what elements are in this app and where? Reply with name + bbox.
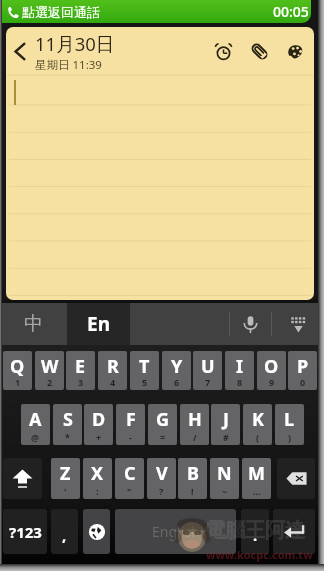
staticText: U: [201, 354, 215, 379]
staticText: www.kocpc.com.tw: [206, 547, 313, 562]
button[interactable]: O: [257, 351, 286, 390]
staticText: J: [223, 407, 229, 432]
staticText: Y: [171, 354, 183, 379]
staticText: 11月30日: [35, 31, 115, 56]
button[interactable]: ,: [51, 509, 78, 554]
staticText: ~: [222, 485, 228, 497]
button[interactable]: A: [21, 404, 50, 445]
button[interactable]: Voice input: [230, 303, 271, 345]
button[interactable]: L: [275, 404, 304, 445]
button[interactable]: X: [83, 458, 112, 499]
staticText: F: [126, 407, 136, 432]
button[interactable]: Attach: [244, 36, 275, 67]
button[interactable]: N: [210, 458, 239, 499]
button[interactable]: Reminder: [208, 36, 239, 67]
staticText: 0: [300, 376, 306, 388]
staticText: R: [107, 354, 119, 379]
staticText: Q: [10, 354, 25, 379]
button[interactable]: S: [53, 404, 82, 445]
button[interactable]: I: [225, 351, 254, 390]
staticText: O: [264, 354, 279, 379]
staticText: 星期日 11:39: [35, 57, 102, 73]
button[interactable]: P: [288, 351, 317, 390]
staticText: Z: [60, 461, 71, 486]
staticText: 4: [110, 376, 116, 388]
staticText: L: [284, 407, 295, 432]
button[interactable]: U: [193, 351, 222, 390]
staticText: ?123: [9, 522, 42, 542]
staticText: ): [288, 431, 292, 443]
button[interactable]: R: [98, 351, 127, 390]
button[interactable]: M: [242, 458, 271, 499]
staticText: 3: [78, 376, 84, 388]
staticText: I: [236, 354, 244, 379]
staticText: 1: [15, 376, 21, 388]
button[interactable]: En: [67, 303, 130, 345]
staticText: !: [191, 485, 194, 497]
button[interactable]: Z: [51, 458, 80, 499]
staticText: H: [188, 407, 202, 432]
staticText: 7: [205, 376, 211, 388]
button[interactable]: B: [178, 458, 207, 499]
button[interactable]: W: [35, 351, 64, 390]
staticText: 中: [24, 312, 43, 336]
staticText: D: [92, 407, 106, 432]
button[interactable]: C: [115, 458, 144, 499]
button[interactable]: English: [115, 509, 236, 554]
staticText: P: [297, 354, 309, 379]
staticText: 8: [237, 376, 243, 388]
staticText: 5: [142, 376, 148, 388]
staticText: ': [64, 485, 67, 497]
button[interactable]: D: [84, 404, 113, 445]
button[interactable]: Back: [6, 27, 35, 75]
staticText: #: [223, 431, 229, 443]
staticText: .: [253, 525, 258, 545]
staticText: N: [217, 461, 232, 486]
staticText: -: [129, 431, 132, 443]
button[interactable]: Y: [162, 351, 191, 390]
staticText: *: [65, 431, 70, 443]
staticText: ,: [62, 525, 67, 545]
staticText: G: [156, 407, 170, 432]
button[interactable]: .: [241, 509, 269, 554]
button[interactable]: Shift: [3, 458, 42, 499]
button[interactable]: Q: [3, 351, 32, 390]
staticText: 00:05: [273, 2, 309, 21]
staticText: @: [31, 431, 40, 443]
staticText: ?: [159, 485, 164, 497]
staticText: B: [187, 461, 199, 486]
button[interactable]: Hide keyboard: [272, 303, 324, 345]
button[interactable]: Colour: [280, 36, 311, 67]
staticText: S: [63, 407, 73, 432]
staticText: A: [29, 407, 42, 432]
button[interactable]: G: [148, 404, 177, 445]
staticText: (: [256, 431, 260, 443]
button[interactable]: K: [243, 404, 272, 445]
button[interactable]: J: [211, 404, 240, 445]
button[interactable]: H: [180, 404, 209, 445]
staticText: M: [248, 461, 265, 486]
button[interactable]: Enter: [273, 509, 315, 554]
staticText: En: [87, 311, 110, 337]
staticText: E: [75, 354, 86, 379]
button[interactable]: V: [147, 458, 176, 499]
staticText: English: [152, 522, 200, 541]
staticText: 2: [47, 376, 53, 388]
staticText: /: [193, 431, 197, 443]
button[interactable]: Change language: [83, 509, 110, 554]
staticText: V: [156, 461, 168, 486]
staticText: X: [91, 461, 104, 486]
button[interactable]: F: [116, 404, 145, 445]
button[interactable]: Backspace: [277, 458, 315, 499]
staticText: C: [124, 461, 136, 486]
staticText: T: [139, 354, 150, 379]
staticText: +: [96, 431, 102, 443]
staticText: 點選返回通話: [22, 4, 100, 20]
button[interactable]: ?123: [3, 509, 47, 554]
staticText: K: [252, 407, 264, 432]
staticText: …: [253, 485, 261, 497]
button[interactable]: E: [66, 351, 95, 390]
button[interactable]: T: [130, 351, 159, 390]
button[interactable]: 中: [0, 303, 67, 345]
staticText: W: [41, 354, 59, 379]
